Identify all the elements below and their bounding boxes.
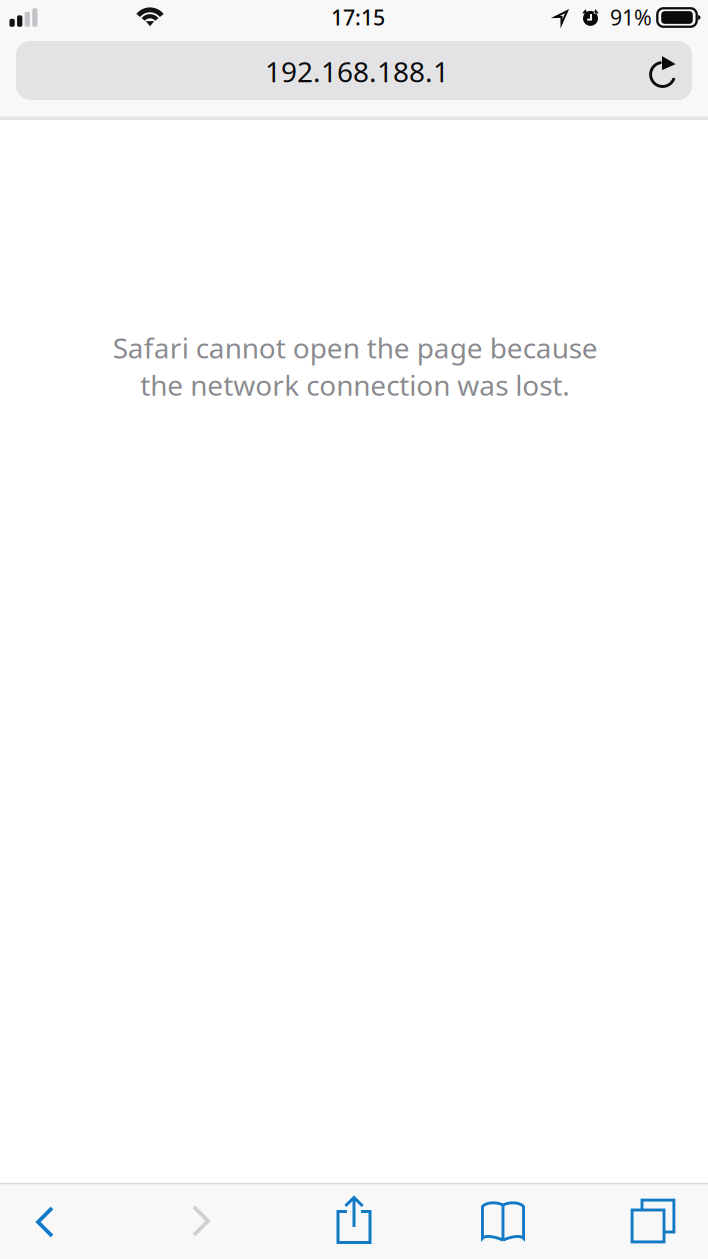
button[interactable]: 192.168.188.1	[16, 41, 692, 100]
staticText: Safari cannot open the page because the …	[112, 329, 597, 403]
staticText: 192.168.188.1	[265, 53, 449, 90]
button[interactable]: Forward	[157, 1183, 245, 1259]
button[interactable]: Back	[1, 1184, 89, 1259]
button[interactable]: Tabs	[609, 1183, 697, 1259]
staticText: 91%	[610, 3, 652, 31]
staticText: 17:15	[331, 3, 385, 31]
button[interactable]: Reload	[636, 41, 692, 100]
button[interactable]: Bookmarks	[459, 1183, 547, 1259]
button[interactable]: Share	[310, 1182, 398, 1258]
